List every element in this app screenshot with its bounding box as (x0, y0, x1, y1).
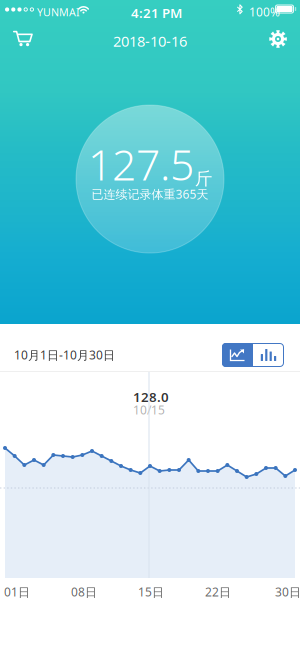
button[interactable]: 2018-10-16 (105, 26, 195, 56)
button[interactable]: Line chart (222, 343, 253, 367)
staticText: 4:21 PM (131, 4, 182, 22)
button[interactable]: Settings (256, 17, 300, 61)
staticText: 已连续记录体重365天 (91, 186, 208, 202)
button[interactable]: Bar chart (253, 343, 284, 367)
staticText: 10月1日-10月30日 (14, 347, 115, 363)
staticText: 10/15 (133, 402, 165, 418)
staticText: 30日 (275, 584, 300, 600)
staticText: 100% (249, 4, 280, 20)
staticText: 127.5 (88, 136, 194, 192)
staticText: YUNMAI (37, 5, 80, 19)
staticText: 斤 (195, 168, 212, 189)
staticText: 22日 (205, 584, 231, 600)
staticText: 2018-10-16 (113, 31, 187, 51)
staticText: 15日 (138, 584, 164, 600)
staticText: 01日 (4, 584, 30, 600)
staticText: 08日 (71, 584, 97, 600)
staticText: 128.0 (133, 388, 169, 406)
button[interactable]: Store (1, 17, 45, 61)
